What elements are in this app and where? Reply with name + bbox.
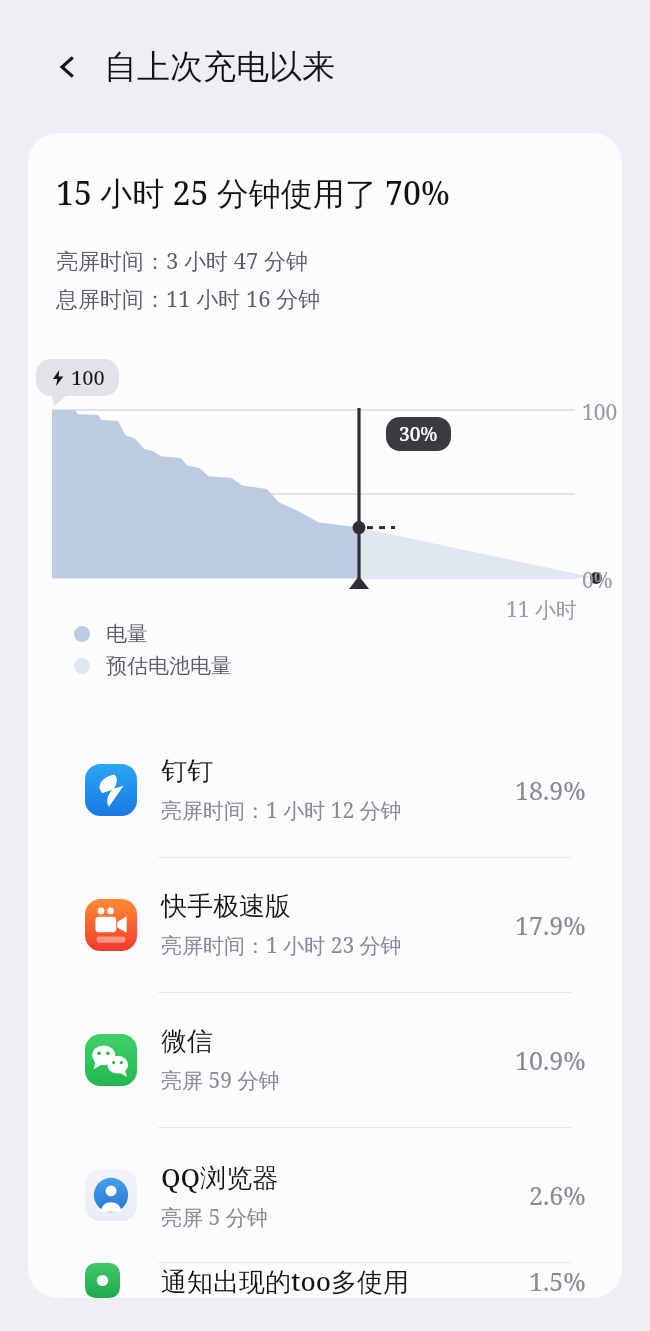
staticText: 预估电池电量: [106, 653, 232, 679]
staticText: 30%: [399, 421, 438, 447]
button[interactable]: 快手极速版: [28, 858, 622, 992]
staticText: 自上次充电以来: [104, 46, 335, 88]
button[interactable]: 预估电池电量: [74, 653, 232, 679]
button[interactable]: 通知出现的too多使用: [28, 1263, 622, 1298]
staticText: 100: [582, 398, 618, 427]
staticText: 10.9%: [515, 1043, 586, 1077]
staticText: 1.5%: [529, 1264, 586, 1298]
staticText: 微信: [161, 1025, 213, 1058]
button[interactable]: QQ浏览器: [28, 1128, 622, 1262]
staticText: 17.9%: [515, 908, 586, 942]
staticText: 息屏时间：11 小时 16 分钟: [56, 283, 321, 313]
staticText: 亮屏时间：3 小时 47 分钟: [56, 245, 309, 275]
staticText: 18.9%: [515, 773, 586, 807]
staticText: 电量: [106, 621, 148, 647]
button[interactable]: 钉钉: [28, 723, 622, 857]
staticText: QQ浏览器: [161, 1159, 279, 1195]
staticText: 2.6%: [529, 1178, 586, 1212]
button[interactable]: 微信: [28, 993, 622, 1127]
staticText: 通知出现的too多使用: [161, 1263, 410, 1298]
staticText: 11 小时: [506, 595, 577, 624]
staticText: 亮屏 5 分钟: [161, 1203, 268, 1232]
staticText: 100: [71, 364, 105, 391]
staticText: 亮屏时间：1 小时 23 分钟: [161, 931, 402, 960]
staticText: 15 小时 25 分钟使用了 70%: [56, 171, 450, 215]
staticText: 钉钉: [161, 755, 213, 788]
button[interactable]: 返回: [40, 39, 96, 95]
staticText: 亮屏 59 分钟: [161, 1066, 280, 1095]
staticText: 亮屏时间：1 小时 12 分钟: [161, 796, 402, 825]
staticText: 0%: [582, 566, 613, 595]
button[interactable]: 电量: [74, 621, 148, 647]
staticText: 快手极速版: [161, 890, 291, 923]
